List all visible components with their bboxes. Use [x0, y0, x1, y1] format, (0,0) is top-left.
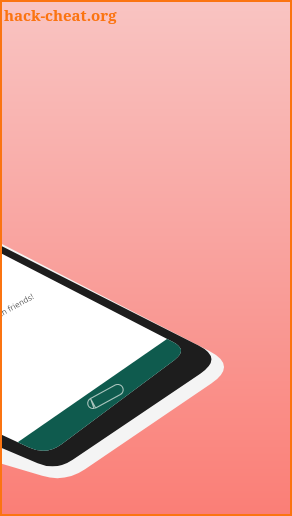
button[interactable]: Phone mockup screenshot — [0, 0, 292, 516]
